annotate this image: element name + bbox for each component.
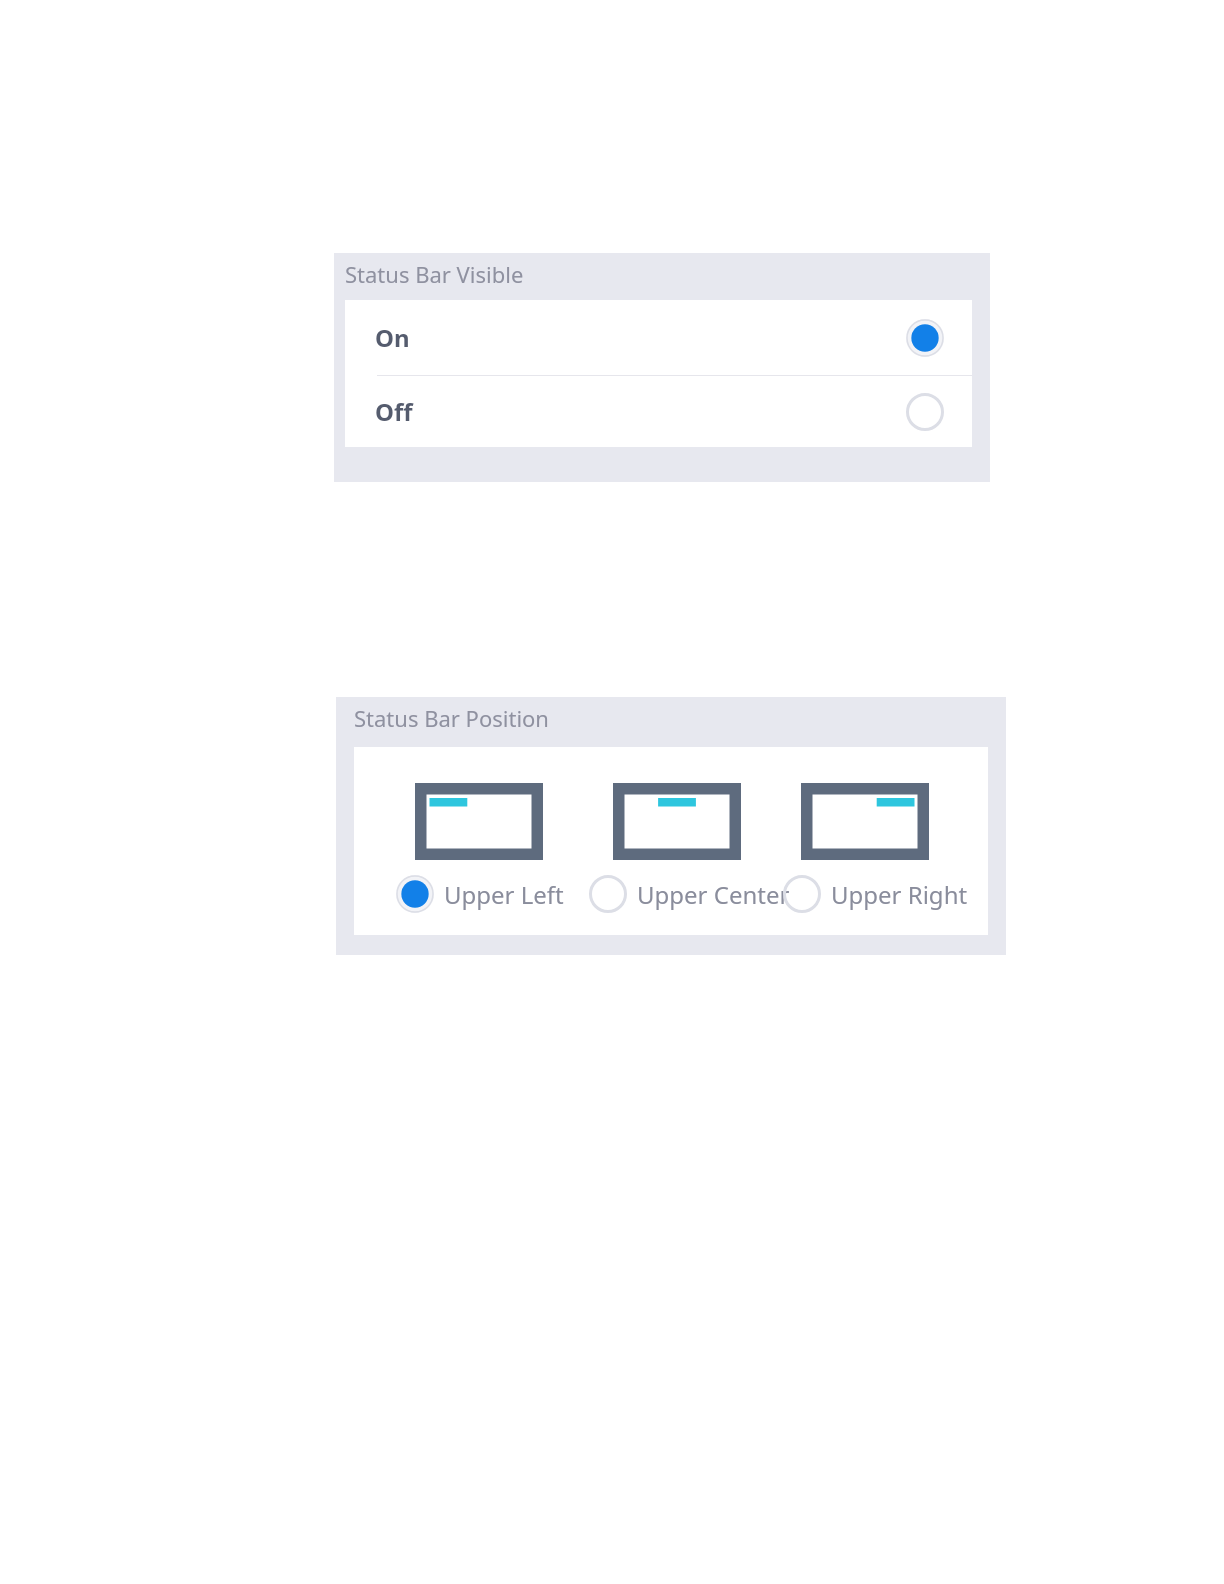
button[interactable]: On <box>345 300 972 375</box>
staticText: Upper Center <box>637 878 790 911</box>
staticText: Status Bar Position <box>354 703 549 733</box>
staticText: Upper Right <box>831 878 968 911</box>
staticText: Off <box>375 395 413 428</box>
staticText: On <box>375 321 410 354</box>
button[interactable]: Upper Right <box>783 872 968 916</box>
staticText: Upper Left <box>444 878 564 911</box>
button[interactable]: Off <box>345 376 972 447</box>
staticText: Status Bar Visible <box>345 259 524 289</box>
button[interactable]: Upper Center <box>589 872 790 916</box>
button[interactable]: Upper Left <box>396 872 564 916</box>
